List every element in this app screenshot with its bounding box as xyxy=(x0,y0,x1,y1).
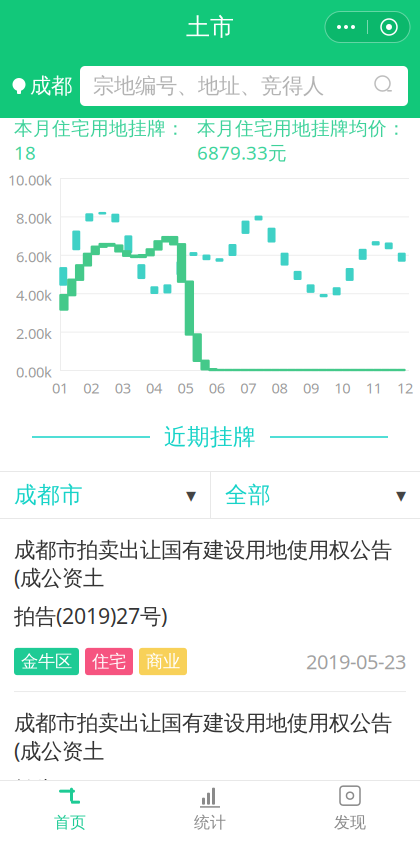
staticText: 01 xyxy=(52,378,68,397)
staticText: 本月住宅用地挂牌均价：6879.33元 xyxy=(197,117,406,165)
staticText: 8.00k xyxy=(16,208,52,228)
staticText: 6.00k xyxy=(16,247,52,266)
button[interactable]: 成都市拍卖出让国有建设用地使用权公告(成公资土 xyxy=(0,519,420,691)
staticText: 全部 xyxy=(225,481,271,509)
staticText: 成都市 xyxy=(14,481,83,509)
staticText: 金牛区 xyxy=(21,651,72,672)
button[interactable]: 选择城市 成都 xyxy=(0,73,72,99)
button[interactable]: 宗地编号、地址、竞得人 xyxy=(80,66,408,106)
staticText: ▾ xyxy=(186,484,196,506)
staticText: 土市 xyxy=(186,12,234,42)
staticText: 金牛区 xyxy=(21,824,72,845)
staticText: 08 xyxy=(271,378,287,397)
staticText: 11 xyxy=(366,378,382,397)
staticText: 10.00k xyxy=(8,170,52,189)
button[interactable]: 成都市拍卖出让国有建设用地使用权公告(成公资土 xyxy=(0,692,420,856)
staticText: 0.00k xyxy=(16,362,52,381)
staticText: 成都市拍卖出让国有建设用地使用权公告(成公资土 xyxy=(14,537,392,591)
button[interactable]: 全部 xyxy=(211,471,420,519)
staticText: 成都市拍卖出让国有建设用地使用权公告(成公资土 xyxy=(14,710,392,765)
staticText: 2019-05-23 xyxy=(306,648,406,675)
button[interactable]: 发现 xyxy=(280,780,420,836)
staticText: 07 xyxy=(240,378,256,397)
staticText: 发现 xyxy=(334,813,366,832)
staticText: 拍告(2019)27号) xyxy=(14,775,167,803)
staticText: 住宅 xyxy=(92,651,126,672)
button[interactable]: 成都市 xyxy=(0,471,210,519)
staticText: 商业 xyxy=(146,651,180,672)
staticText: 统计 xyxy=(194,813,226,832)
staticText: 拍告(2019)27号) xyxy=(14,601,167,630)
staticText: 02 xyxy=(83,378,99,397)
staticText: 4.00k xyxy=(16,285,52,305)
staticText: 04 xyxy=(146,378,162,397)
staticText: 06 xyxy=(209,378,225,397)
staticText: 05 xyxy=(177,378,193,397)
staticText: 近期挂牌 xyxy=(164,423,256,451)
staticText: 12 xyxy=(397,378,413,397)
staticText: 首页 xyxy=(54,813,86,832)
staticText: ▾ xyxy=(396,484,406,506)
staticText: 2.00k xyxy=(16,324,52,343)
staticText: 10 xyxy=(334,378,350,397)
button[interactable]: More options xyxy=(325,11,410,42)
button[interactable]: 首页 xyxy=(0,780,140,836)
button[interactable]: 统计 xyxy=(140,780,280,836)
staticText: 03 xyxy=(115,378,131,397)
staticText: 09 xyxy=(303,378,319,397)
staticText: 宗地编号、地址、竞得人 xyxy=(93,73,324,99)
staticText: 成都 xyxy=(30,73,72,99)
staticText: 本月住宅用地挂牌：18 xyxy=(14,117,185,165)
staticText: 2019-05-23 xyxy=(306,821,406,848)
